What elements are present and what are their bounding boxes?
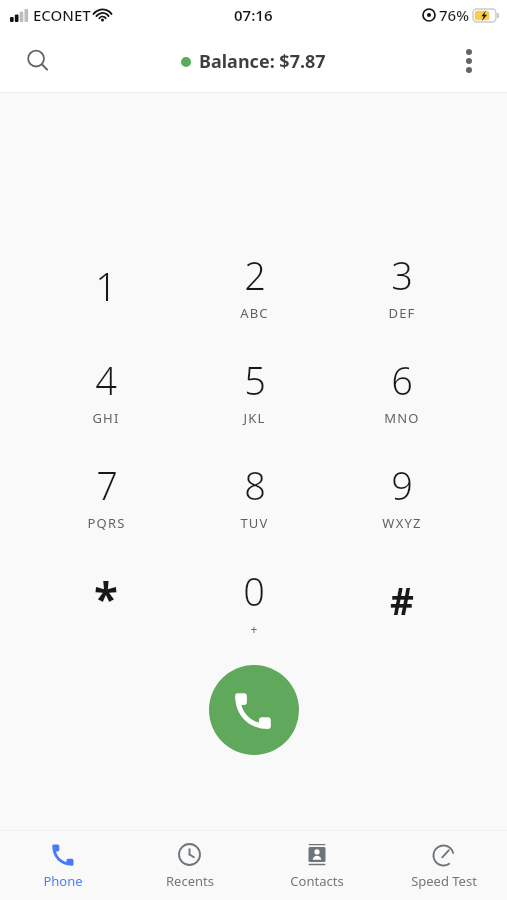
button[interactable]: 1	[32, 233, 180, 338]
staticText: MNO	[384, 409, 420, 427]
staticText: 6	[391, 354, 413, 406]
button[interactable]: 8	[180, 443, 328, 548]
staticText: Speed Test	[411, 872, 477, 890]
staticText: PQRS	[87, 514, 126, 532]
button[interactable]: More options	[445, 37, 493, 85]
staticText: Contacts	[290, 872, 344, 890]
staticText: 3	[391, 249, 413, 301]
staticText: 07:16	[234, 5, 273, 25]
button[interactable]: 4	[32, 338, 180, 443]
staticText: 9	[391, 459, 413, 511]
staticText: ECONET	[33, 5, 91, 25]
staticText: WXYZ	[382, 514, 422, 532]
staticText: Balance: $7.87	[199, 49, 326, 74]
button[interactable]: Contacts	[253, 836, 380, 896]
button[interactable]: Call	[209, 665, 299, 755]
staticText: 8	[244, 459, 266, 511]
staticText: 2	[244, 249, 266, 301]
button[interactable]: 3	[328, 233, 476, 338]
button[interactable]: 2	[180, 233, 328, 338]
staticText: DEF	[388, 304, 416, 322]
button[interactable]: 0	[180, 548, 328, 653]
staticText: 5	[244, 354, 266, 406]
staticText: 1	[95, 260, 117, 312]
staticText: *	[94, 568, 118, 628]
staticText: +	[250, 621, 259, 637]
button[interactable]: Recents	[126, 836, 253, 896]
staticText: Recents	[166, 872, 214, 890]
button[interactable]: 5	[180, 338, 328, 443]
button[interactable]: *	[32, 548, 180, 653]
button[interactable]: #	[328, 548, 476, 653]
button[interactable]: 7	[32, 443, 180, 548]
staticText: 0	[243, 565, 265, 617]
button[interactable]: Balance: $7.87	[175, 45, 332, 78]
button[interactable]: Phone	[0, 836, 126, 896]
button[interactable]: Search	[14, 37, 62, 85]
staticText: 76%	[439, 5, 469, 25]
staticText: ABC	[240, 304, 269, 322]
staticText: Phone	[43, 872, 83, 890]
staticText: GHI	[92, 409, 120, 427]
staticText: JKL	[243, 409, 266, 427]
button[interactable]: 6	[328, 338, 476, 443]
button[interactable]: 9	[328, 443, 476, 548]
button[interactable]: Speed Test	[380, 836, 507, 896]
staticText: TUV	[240, 514, 269, 532]
staticText: 4	[95, 354, 117, 406]
staticText: #	[390, 575, 414, 625]
staticText: 7	[96, 459, 118, 511]
